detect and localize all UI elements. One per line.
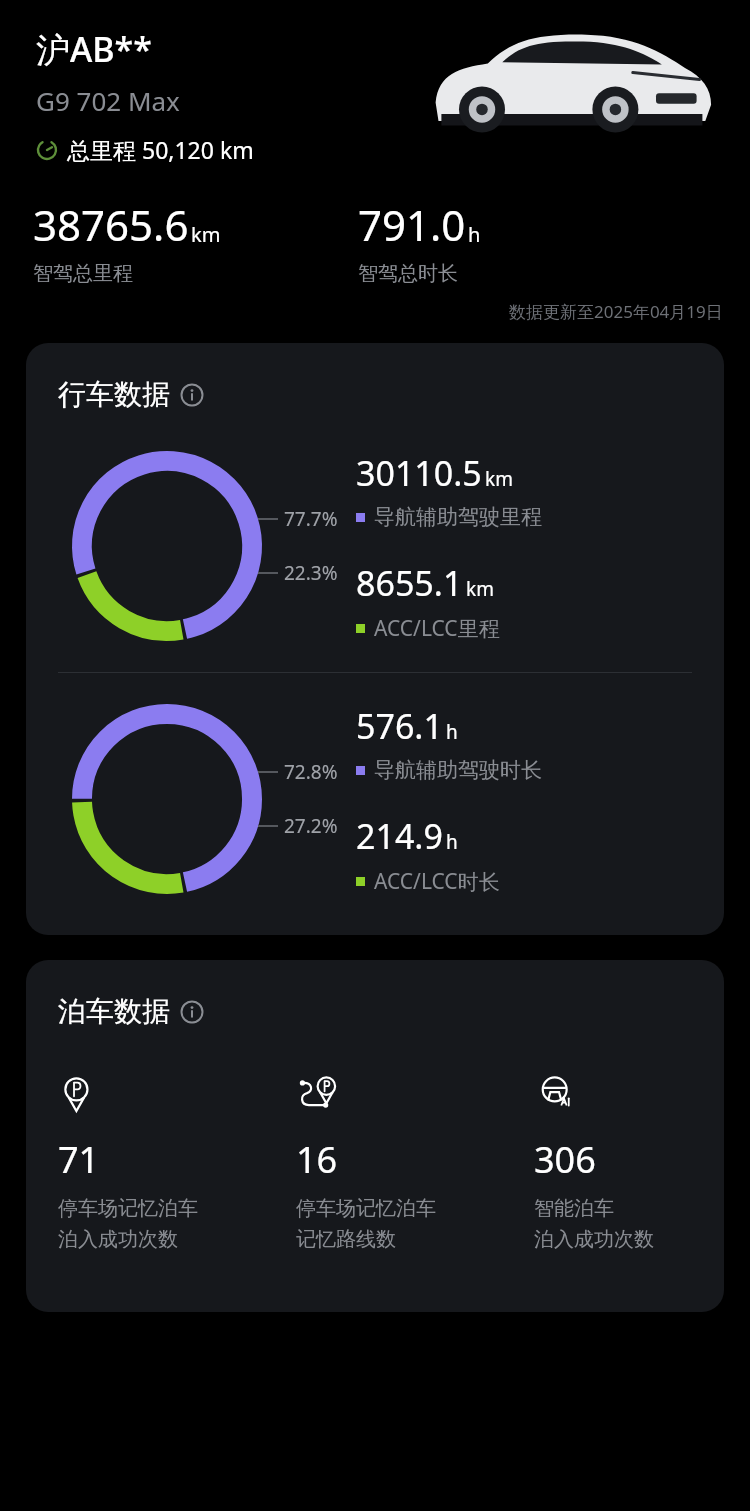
staticText: G9 702 Max [36, 83, 180, 118]
staticText: h [446, 829, 458, 855]
staticText: 智驾总时长 [358, 261, 458, 286]
button[interactable]: 泊车数据 [26, 960, 724, 1312]
staticText: 27.2% [284, 813, 338, 839]
staticText: 导航辅助驾驶时长 [374, 757, 542, 783]
staticText: 71 [58, 1135, 100, 1184]
button[interactable]: 说明 [180, 383, 204, 407]
staticText: h [468, 221, 481, 248]
staticText: 576.1 [356, 703, 443, 749]
staticText: 30110.5 [356, 450, 482, 496]
staticText: 智能泊车 [534, 1196, 614, 1221]
staticText: 泊车数据 [58, 994, 170, 1029]
staticText: 306 [534, 1135, 596, 1184]
staticText: 38765.6 [33, 196, 189, 253]
staticText: 72.8% [284, 759, 338, 785]
staticText: 泊入成功次数 [58, 1227, 178, 1252]
staticText: 8655.1 [356, 560, 463, 606]
staticText: 791.0 [358, 196, 466, 253]
staticText: 16 [296, 1135, 338, 1184]
staticText: km [485, 466, 513, 492]
staticText: ACC/LCC里程 [374, 614, 500, 643]
staticText: h [446, 719, 458, 745]
staticText: 214.9 [356, 813, 443, 859]
staticText: 泊入成功次数 [534, 1227, 654, 1252]
staticText: 沪AB** [36, 26, 152, 72]
staticText: km [191, 221, 221, 248]
button[interactable]: 说明 [180, 1000, 204, 1024]
staticText: 导航辅助驾驶里程 [374, 504, 542, 530]
staticText: 记忆路线数 [296, 1227, 396, 1252]
staticText: 数据更新至2025年04月19日 [509, 300, 723, 323]
staticText: 停车场记忆泊车 [58, 1196, 198, 1221]
staticText: 停车场记忆泊车 [296, 1196, 436, 1221]
staticText: 智驾总里程 [33, 261, 133, 286]
button[interactable]: 行车数据 [26, 343, 724, 935]
staticText: 行车数据 [58, 377, 170, 412]
staticText: 77.7% [284, 506, 338, 532]
staticText: ACC/LCC时长 [374, 867, 500, 896]
staticText: 总里程 50,120 km [67, 134, 254, 165]
staticText: 22.3% [284, 560, 338, 586]
staticText: km [466, 576, 494, 602]
